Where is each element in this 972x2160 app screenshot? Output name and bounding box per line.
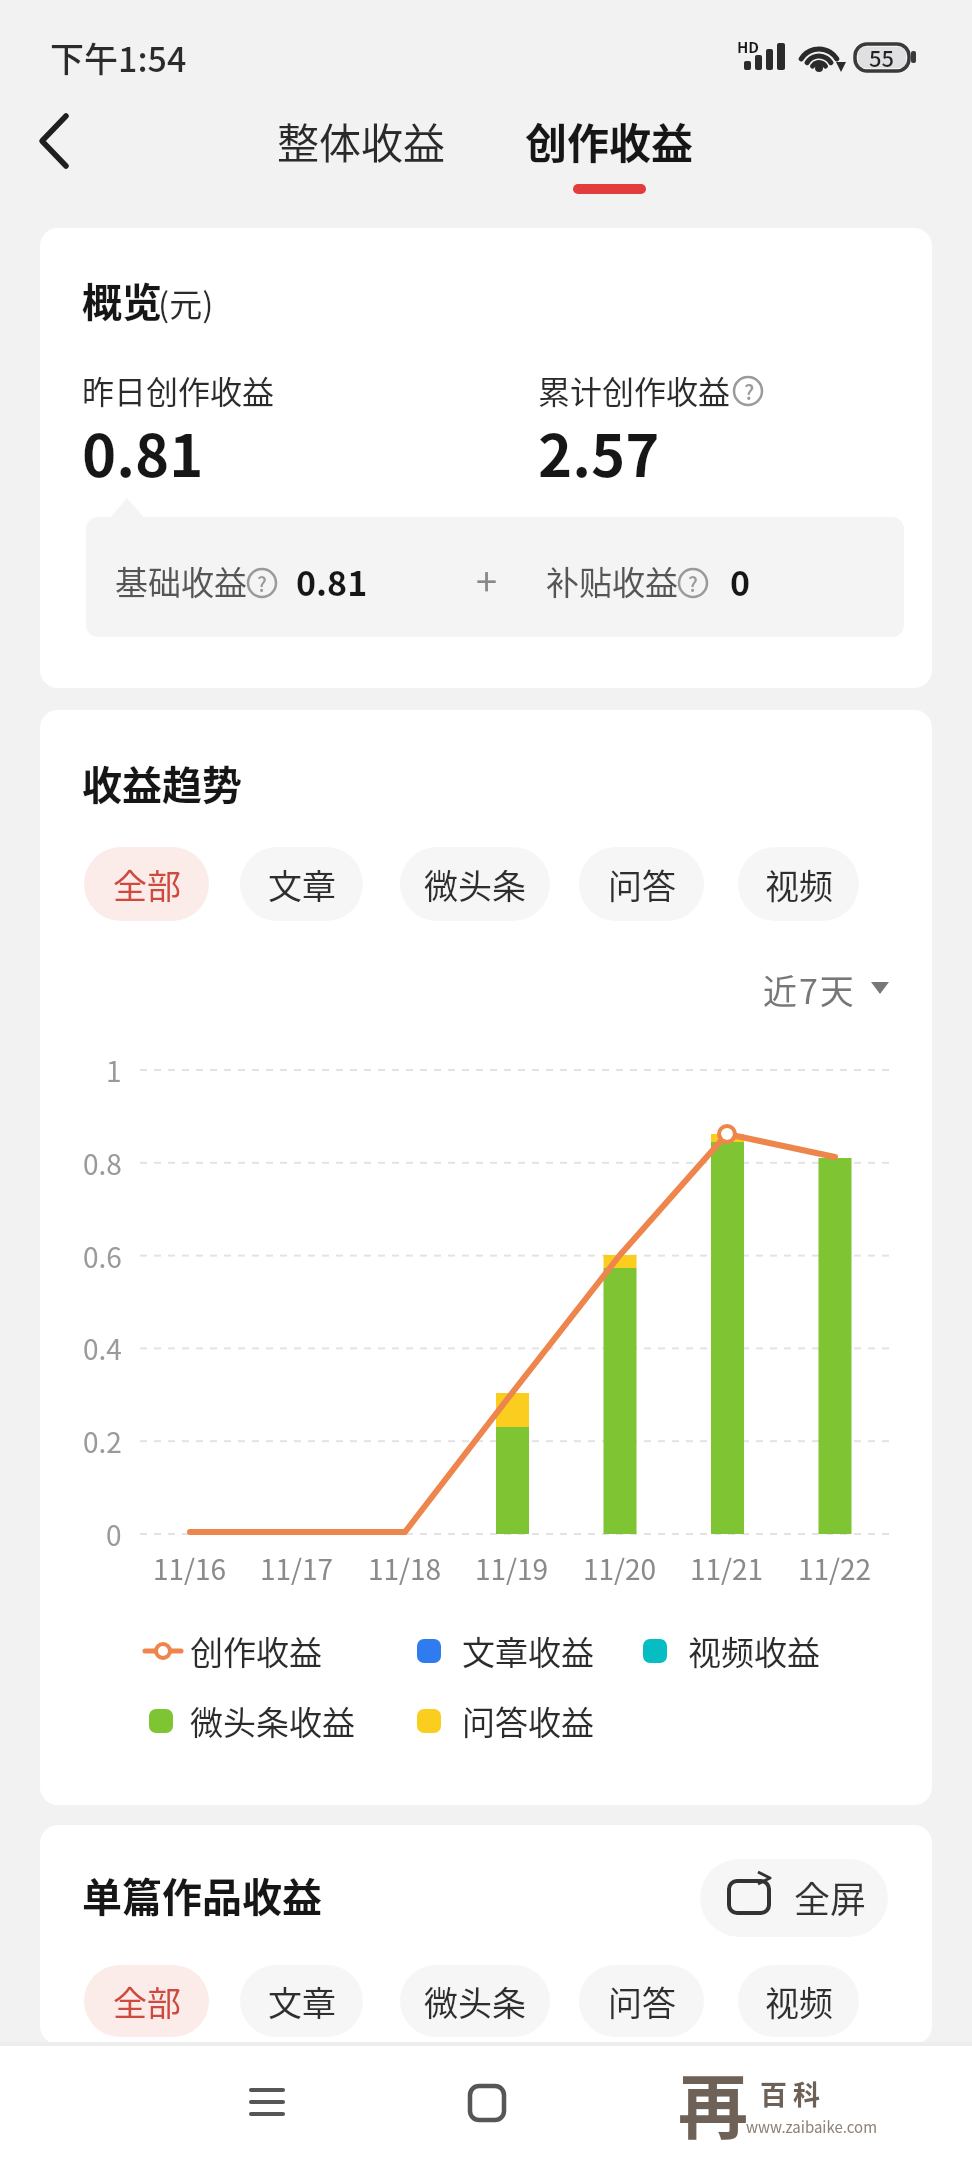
staticText: 文章 xyxy=(268,1977,336,2026)
button[interactable] xyxy=(510,100,710,180)
staticText: 收益趋势 xyxy=(82,754,242,812)
staticText: 问答 xyxy=(608,860,676,909)
staticText: 全部 xyxy=(113,1977,181,2026)
staticText: 单篇作品收益 xyxy=(82,1866,322,1924)
staticText: 昨日创作收益 xyxy=(82,367,275,413)
staticText: + xyxy=(476,552,498,607)
staticText: 0.81 xyxy=(82,410,204,494)
button[interactable]: 文章 xyxy=(240,1965,363,2037)
staticText: 0.2 xyxy=(83,1421,122,1462)
staticText: 问答收益 xyxy=(462,1697,594,1745)
staticText: 全屏 xyxy=(794,1871,867,1923)
staticText: 视频 xyxy=(765,860,833,909)
staticText: 11/16 xyxy=(153,1548,227,1589)
staticText: 0.8 xyxy=(83,1143,122,1184)
staticText: 0.6 xyxy=(83,1236,122,1277)
staticText: ? xyxy=(257,569,267,598)
button[interactable]: 微头条 xyxy=(400,847,550,921)
button[interactable] xyxy=(260,100,460,180)
staticText: 整体收益 xyxy=(277,110,446,171)
staticText: 下午1:54 xyxy=(50,33,187,82)
staticText: HD xyxy=(737,36,760,58)
button[interactable]: 视频 xyxy=(738,847,859,921)
staticText: 微头条 xyxy=(424,1977,526,2026)
staticText: www.zaibaike.com xyxy=(746,2116,878,2138)
staticText: 2.57 xyxy=(538,410,660,494)
staticText: 问答 xyxy=(608,1977,676,2026)
staticText: 55 xyxy=(869,41,895,73)
staticText: 全部 xyxy=(113,860,181,909)
staticText: ? xyxy=(688,569,698,598)
button[interactable] xyxy=(20,105,100,180)
staticText: 11/22 xyxy=(798,1548,872,1589)
staticText: 11/19 xyxy=(475,1548,549,1589)
staticText: 累计创作收益 xyxy=(538,367,731,413)
staticText: 文章收益 xyxy=(462,1627,594,1675)
staticText: 0 xyxy=(106,1514,122,1555)
button[interactable] xyxy=(750,960,900,1020)
button[interactable]: 全部 xyxy=(84,847,209,921)
staticText: 11/20 xyxy=(583,1548,657,1589)
staticText: 文章 xyxy=(268,860,336,909)
button[interactable]: 文章 xyxy=(240,847,363,921)
staticText: 视频 xyxy=(765,1977,833,2026)
staticText: (元) xyxy=(158,279,214,327)
button[interactable]: 视频 xyxy=(738,1965,859,2037)
staticText: 11/21 xyxy=(690,1548,764,1589)
staticText: 微头条 xyxy=(424,860,526,909)
staticText: 补贴收益 xyxy=(546,557,678,605)
staticText: 视频收益 xyxy=(688,1627,820,1675)
button[interactable] xyxy=(700,1859,888,1937)
staticText: 0 xyxy=(730,557,751,606)
staticText: 概览 xyxy=(82,271,162,329)
staticText: 11/17 xyxy=(260,1548,334,1589)
staticText: 创作收益 xyxy=(190,1627,322,1675)
staticText: 再 xyxy=(678,2052,748,2152)
button[interactable]: 问答 xyxy=(579,1965,704,2037)
staticText: 11/18 xyxy=(368,1548,442,1589)
staticText: 微头条收益 xyxy=(190,1697,355,1745)
button[interactable]: 微头条 xyxy=(400,1965,550,2037)
staticText: 近7天 xyxy=(763,965,856,1014)
button[interactable]: 问答 xyxy=(579,847,704,921)
staticText: 基础收益 xyxy=(115,557,247,605)
staticText: 创作收益 xyxy=(525,110,694,171)
staticText: 百科 xyxy=(760,2074,826,2113)
staticText: ? xyxy=(744,376,755,406)
staticText: 1 xyxy=(106,1050,122,1091)
staticText: 0.81 xyxy=(296,557,368,606)
staticText: 0.4 xyxy=(83,1328,122,1369)
button[interactable]: 全部 xyxy=(84,1965,209,2037)
